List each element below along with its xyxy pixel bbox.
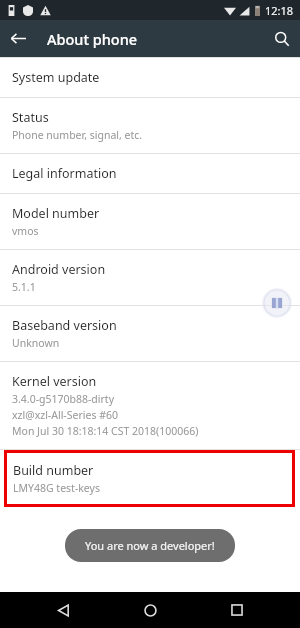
staticText: 3.4.0-g5170b88-dirty [12, 392, 115, 406]
staticText: Model number [12, 205, 100, 222]
button[interactable]: Search [263, 20, 300, 57]
button[interactable]: Back [0, 20, 37, 57]
staticText: Legal information [12, 165, 117, 182]
staticText: Unknown [12, 336, 60, 350]
staticText: xzl@xzl-All-Series #60 [12, 408, 118, 422]
button[interactable]: Status [0, 98, 300, 153]
staticText: Kernel version [12, 373, 97, 390]
button[interactable]: Kernel version [0, 362, 300, 449]
button[interactable]: Back [39, 592, 87, 628]
button[interactable]: Build number [4, 450, 295, 507]
staticText: You are now a developer! [85, 538, 215, 553]
staticText: System update [12, 69, 100, 86]
button[interactable]: Recent apps [213, 592, 261, 628]
staticText: 12:18 [265, 3, 294, 18]
button[interactable]: System update [0, 58, 300, 97]
staticText: Status [12, 109, 49, 126]
button[interactable]: Model number [0, 194, 300, 249]
staticText: Baseband version [12, 317, 117, 334]
staticText: Android version [12, 261, 106, 278]
staticText: Phone number, signal, etc. [12, 128, 143, 142]
button[interactable]: Android version [0, 250, 300, 305]
staticText: About phone [47, 29, 138, 49]
staticText: Build number [13, 462, 94, 479]
button[interactable]: Legal information [0, 154, 300, 193]
staticText: LMY48G test-keys [13, 481, 100, 495]
staticText: Mon Jul 30 18:18:14 CST 2018(100066) [12, 424, 199, 438]
staticText: 5.1.1 [12, 280, 36, 294]
button[interactable]: Home [126, 592, 174, 628]
staticText: vmos [12, 224, 39, 238]
button[interactable]: Baseband version [0, 306, 300, 361]
